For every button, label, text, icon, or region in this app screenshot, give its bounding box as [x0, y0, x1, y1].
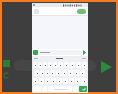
button[interactable] — [50, 70, 55, 76]
button[interactable] — [14, 60, 96, 71]
button[interactable] — [81, 78, 87, 84]
button[interactable] — [51, 78, 56, 84]
button[interactable] — [33, 62, 37, 68]
button[interactable] — [64, 62, 69, 68]
button[interactable] — [45, 78, 50, 84]
button[interactable]: Attach — [33, 50, 38, 55]
button[interactable] — [39, 78, 44, 84]
button[interactable] — [62, 70, 67, 76]
button[interactable] — [40, 70, 44, 76]
button[interactable] — [58, 62, 63, 68]
button[interactable] — [70, 62, 75, 68]
button[interactable] — [56, 70, 61, 76]
button[interactable] — [43, 62, 47, 68]
button[interactable]: Space — [48, 86, 72, 92]
button[interactable] — [82, 62, 87, 68]
button[interactable] — [45, 70, 49, 76]
button[interactable]: Profile — [34, 9, 39, 14]
button[interactable] — [77, 9, 86, 14]
button[interactable]: Play — [101, 61, 112, 73]
button[interactable]: Send — [82, 50, 87, 55]
button[interactable] — [69, 78, 74, 84]
button[interactable] — [63, 78, 68, 84]
button[interactable] — [57, 78, 62, 84]
button[interactable] — [39, 50, 81, 55]
button[interactable] — [74, 70, 79, 76]
button[interactable] — [75, 78, 80, 84]
button[interactable]: Enter — [79, 86, 87, 92]
button[interactable] — [38, 62, 42, 68]
button[interactable]: Profile — [32, 7, 88, 15]
button[interactable] — [53, 62, 57, 68]
button[interactable] — [33, 78, 38, 84]
button[interactable] — [76, 62, 81, 68]
button[interactable] — [68, 70, 73, 76]
button[interactable] — [48, 62, 52, 68]
button[interactable] — [35, 70, 39, 76]
button[interactable] — [80, 70, 85, 76]
